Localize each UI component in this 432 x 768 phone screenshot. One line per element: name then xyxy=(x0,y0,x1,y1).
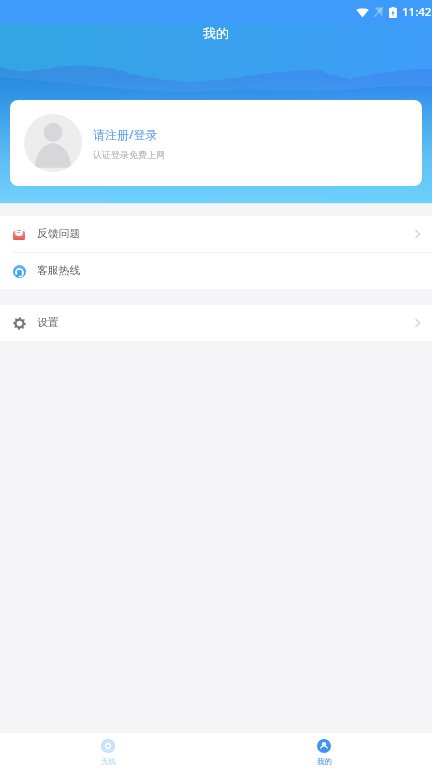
staticText: 反馈问题 xyxy=(37,227,81,241)
staticText: 我的 xyxy=(0,25,432,41)
staticText: 客服热线 xyxy=(37,264,81,278)
staticText: 认证登录免费上网 xyxy=(93,149,165,160)
staticText: 设置 xyxy=(37,316,59,330)
staticText: 11:42 xyxy=(402,4,432,20)
staticText: 我的 xyxy=(317,757,332,766)
button[interactable]: 反馈问题 xyxy=(0,216,432,252)
button[interactable]: 无线 xyxy=(0,733,216,768)
button[interactable]: 请注册/登录 xyxy=(10,100,422,186)
button[interactable]: 我的 xyxy=(216,733,432,768)
button[interactable]: 客服热线 xyxy=(0,253,432,289)
staticText: 无线 xyxy=(101,757,116,766)
staticText: 请注册/登录 xyxy=(93,126,158,142)
button[interactable]: 设置 xyxy=(0,305,432,341)
